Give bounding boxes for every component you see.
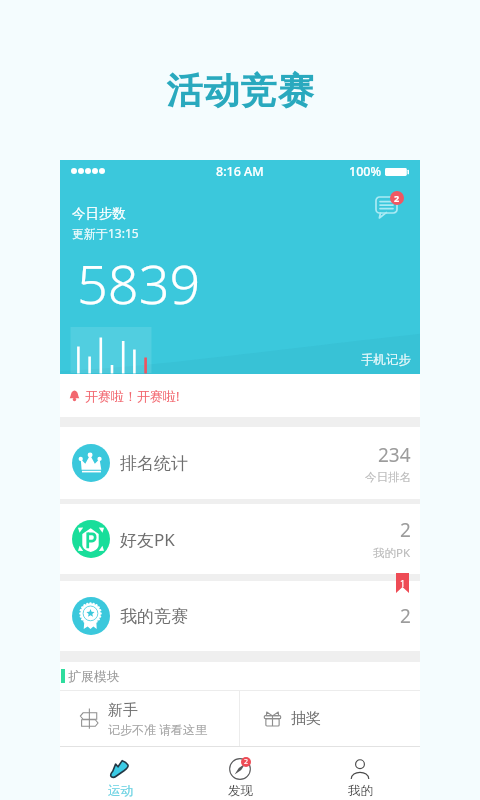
staticText: 开赛啦！开赛啦! <box>85 387 180 405</box>
button[interactable]: 我的竞赛 <box>60 581 420 651</box>
staticText: 我的 <box>348 783 373 799</box>
staticText: 今日步数 <box>72 205 126 222</box>
staticText: 2 <box>244 757 249 767</box>
staticText: 234 <box>378 442 411 468</box>
staticText: 更新于13:15 <box>72 225 139 241</box>
staticText: 新手 <box>108 701 138 720</box>
staticText: 运动 <box>108 783 133 799</box>
button[interactable]: 新手 <box>60 691 239 746</box>
staticText: 好友PK <box>120 528 175 551</box>
button[interactable]: 排名统计 <box>60 427 420 499</box>
button[interactable]: 好友PK <box>60 504 420 574</box>
staticText: 我的PK <box>373 545 411 561</box>
staticText: 100% <box>349 163 382 180</box>
staticText: 扩展模块 <box>68 668 120 684</box>
staticText: 2 <box>400 517 411 543</box>
staticText: 排名统计 <box>120 453 188 474</box>
button[interactable]: 2 <box>180 747 300 800</box>
staticText: 1 <box>400 577 406 589</box>
staticText: 今日排名 <box>365 470 411 484</box>
staticText: 8:16 AM <box>216 163 264 180</box>
staticText: 2 <box>394 192 400 204</box>
button[interactable]: 开赛啦！开赛啦! <box>60 374 420 417</box>
staticText: 我的竞赛 <box>120 606 188 627</box>
staticText: 活动竞赛 <box>166 68 314 113</box>
button[interactable]: Messages <box>373 191 409 225</box>
button[interactable]: 我的 <box>300 747 420 800</box>
button[interactable]: 运动 <box>60 747 180 800</box>
staticText: 记步不准 请看这里 <box>108 721 208 737</box>
staticText: 5839 <box>77 246 201 320</box>
button[interactable]: 抽奖 <box>240 691 420 746</box>
staticText: 手机记步 <box>361 352 411 368</box>
staticText: 抽奖 <box>291 709 321 728</box>
staticText: 发现 <box>228 783 253 799</box>
staticText: 2 <box>400 603 411 629</box>
